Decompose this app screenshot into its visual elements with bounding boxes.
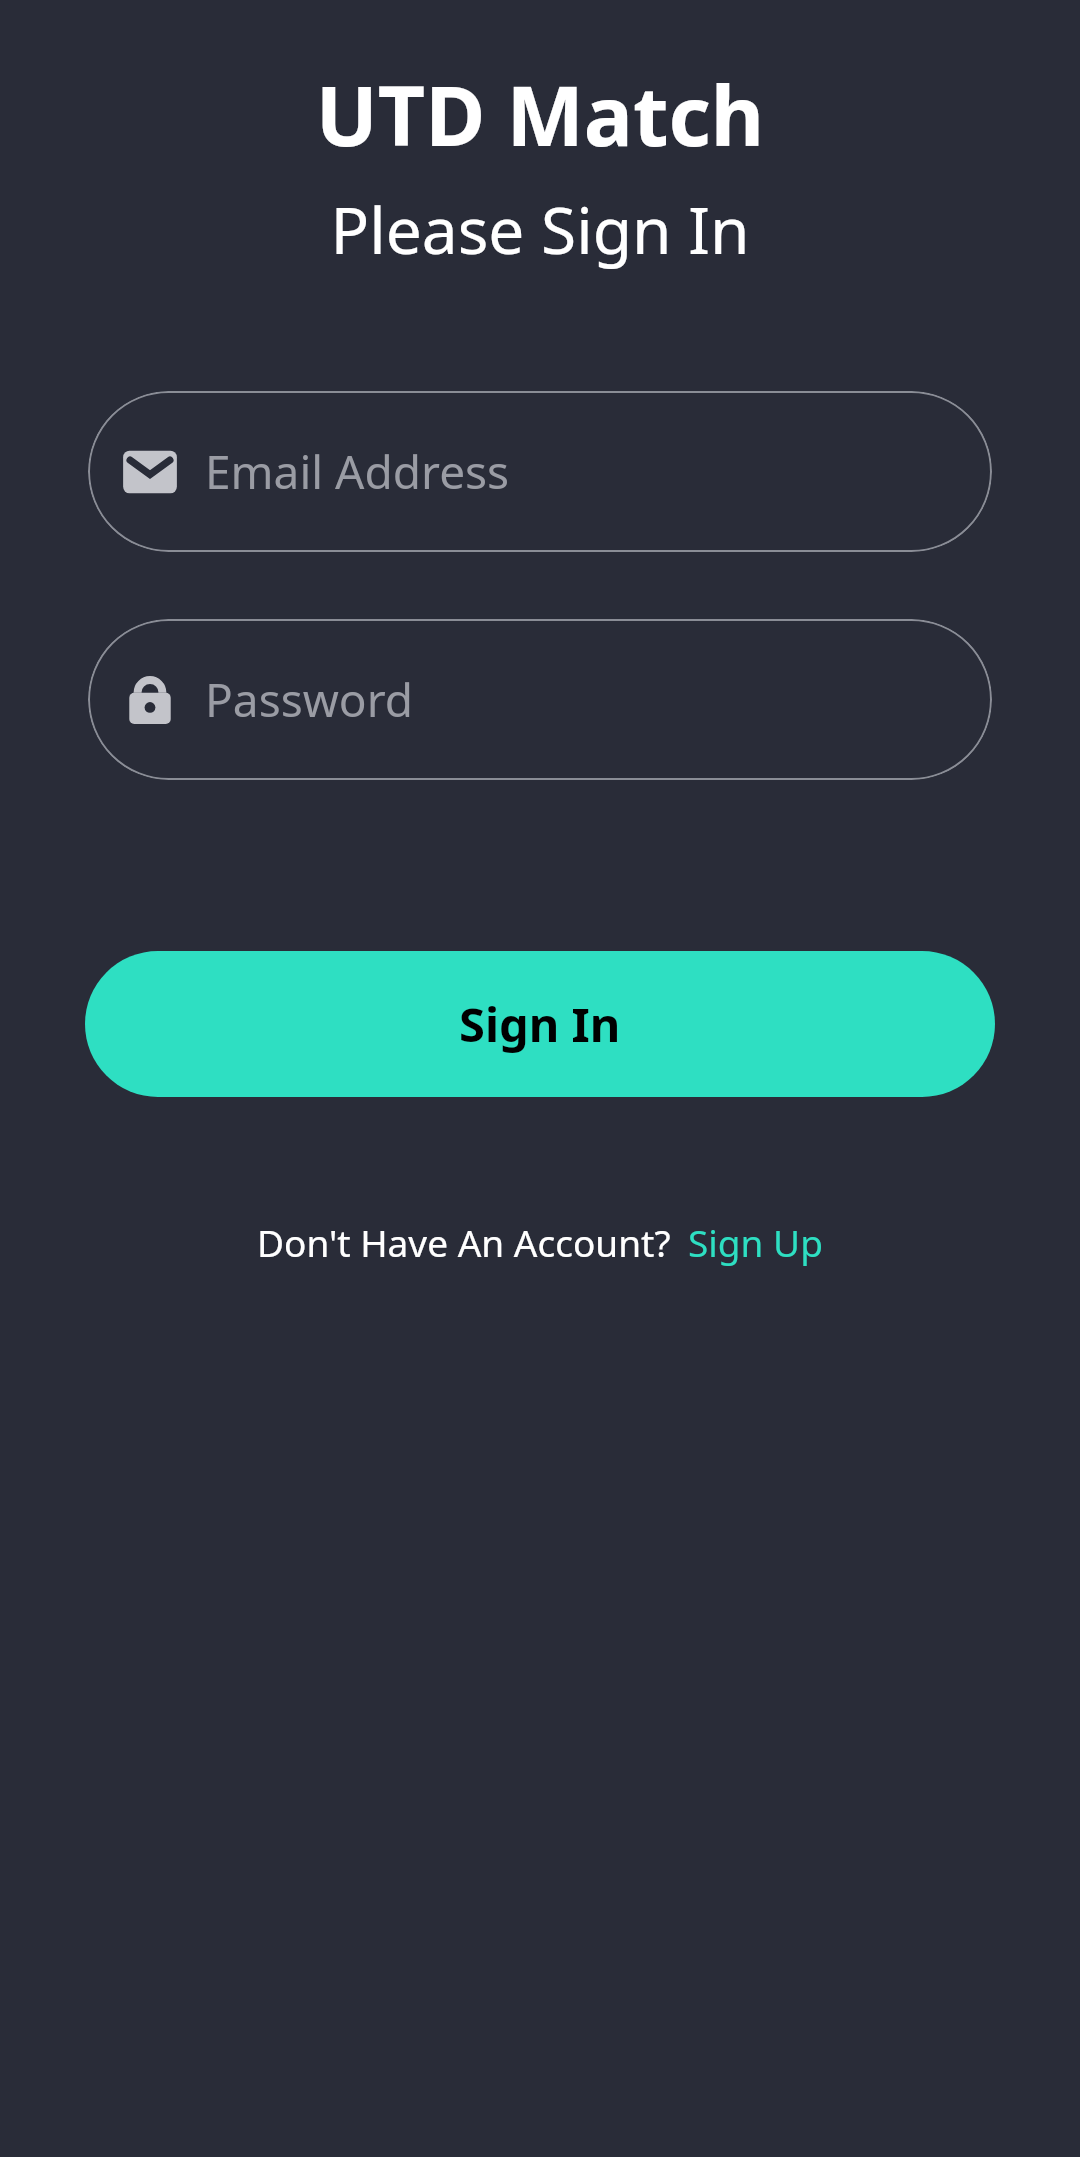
staticText: Sign Up xyxy=(688,1217,823,1267)
button[interactable]: Sign Up xyxy=(688,1217,823,1267)
staticText: Email Address xyxy=(205,440,510,503)
staticText: Sign In xyxy=(459,992,621,1056)
staticText: UTD Match xyxy=(0,58,1080,170)
button[interactable]: Sign In xyxy=(85,951,995,1097)
other: Password xyxy=(122,672,178,728)
button[interactable]: Email address xyxy=(88,391,992,552)
other: Email address xyxy=(122,444,178,500)
button[interactable]: Password xyxy=(88,619,992,780)
staticText: Don't Have An Account? xyxy=(257,1217,671,1267)
staticText: Password xyxy=(205,668,414,731)
staticText: Please Sign In xyxy=(0,186,1080,273)
